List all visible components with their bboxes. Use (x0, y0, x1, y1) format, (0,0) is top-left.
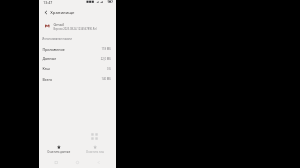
staticText: 22,0 МБ (101, 57, 111, 61)
other: All apps (91, 133, 98, 140)
staticText: 13:47 (43, 0, 52, 5)
staticText: Хранилище (50, 10, 75, 16)
button[interactable]: Home (73, 158, 81, 166)
staticText: 140 МБ (101, 77, 111, 81)
button[interactable]: Back (41, 8, 50, 17)
staticText: Данные (42, 56, 56, 61)
staticText: Приложение (42, 47, 65, 52)
button[interactable]: Очистить данные (44, 145, 74, 154)
staticText: 0 Б (107, 67, 111, 71)
button[interactable]: Кэш (39, 63, 116, 73)
button[interactable]: Всего (39, 74, 116, 84)
staticText: 118 МБ (101, 47, 111, 51)
button[interactable]: Приложение (39, 44, 116, 54)
staticText: Всего (42, 77, 52, 82)
button[interactable]: Gmail (39, 20, 116, 32)
button[interactable]: Recent apps (52, 158, 60, 166)
staticText: Использование памяти (42, 37, 72, 41)
staticText: Кэш (42, 66, 50, 71)
button[interactable]: Очистить кэш (80, 145, 110, 154)
staticText: Версия 2025.08.24.1234567890.Rel (53, 27, 97, 30)
button[interactable]: Данные (39, 54, 116, 64)
staticText: Очистить данные (47, 150, 70, 154)
staticText: Gmail (53, 22, 64, 27)
staticText: Очистить кэш (86, 150, 104, 154)
